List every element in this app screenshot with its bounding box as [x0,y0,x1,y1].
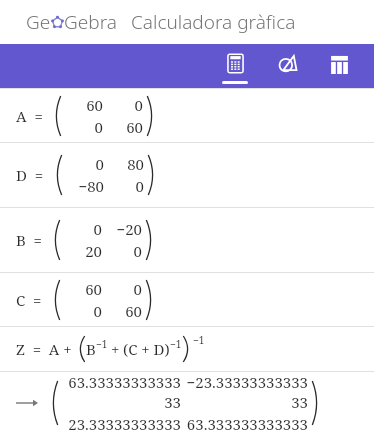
button[interactable]: Geometry [270,44,304,88]
button[interactable]: C = [0,273,374,326]
staticText: Calculadora gràfica [131,9,296,35]
staticText: −23.3333333333333 [181,372,308,412]
button[interactable]: 63.3333333333333 [0,372,374,433]
button[interactable]: Z = A + [0,327,374,371]
staticText: (C + D) [123,339,170,359]
staticText: 0 [103,95,143,115]
staticText: 60 [103,117,143,137]
staticText: 0 [102,241,142,261]
button[interactable]: A = [0,89,374,142]
staticText: 23.3333333333333 [62,414,181,433]
staticText: C = [16,290,42,310]
staticText: + [111,339,120,359]
staticText: 60 [102,301,142,321]
staticText: 63.3333333333333 [62,372,181,412]
staticText: −1 [193,333,205,347]
staticText: Z = A + [16,339,72,359]
staticText: Ge [26,9,51,35]
staticText: 80 [104,154,144,174]
staticText: 60 [64,279,102,299]
staticText: 20 [64,241,102,261]
staticText: D = [16,165,44,185]
staticText: 0 [102,279,142,299]
staticText: 0 [64,219,102,239]
staticText: B [86,339,96,359]
staticText: 0 [104,176,144,196]
staticText: 0 [66,154,104,174]
staticText: −80 [66,176,104,196]
staticText: 63.3333333333333 [181,414,308,433]
staticText: 60 [65,95,103,115]
staticText: −1 [170,337,182,351]
button[interactable]: Table [322,44,356,88]
button[interactable]: D = [0,143,374,207]
staticText: A = [16,106,43,126]
button[interactable]: B = [0,208,374,272]
staticText: Gebra [64,9,117,35]
staticText: B = [16,230,42,250]
staticText: −1 [96,337,108,351]
button[interactable]: Calculator [218,44,252,88]
staticText: 0 [64,301,102,321]
staticText: −20 [102,219,142,239]
staticText: 0 [65,117,103,137]
